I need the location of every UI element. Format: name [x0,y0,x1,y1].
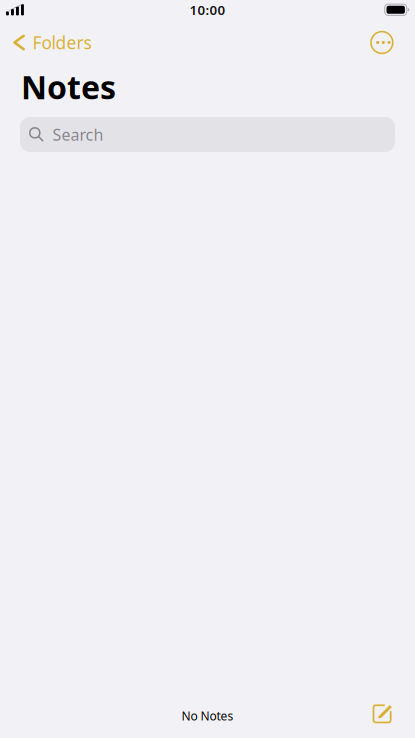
staticText: 10:00 [189,1,225,19]
staticText: No Notes [181,708,233,724]
button[interactable]: Search [20,117,395,152]
staticText: Search [52,124,103,145]
staticText: Folders [33,31,92,54]
button[interactable]: Folders [0,25,102,60]
button[interactable]: More [359,25,415,60]
staticText: Notes [21,65,116,108]
button[interactable]: New Note [358,697,405,734]
